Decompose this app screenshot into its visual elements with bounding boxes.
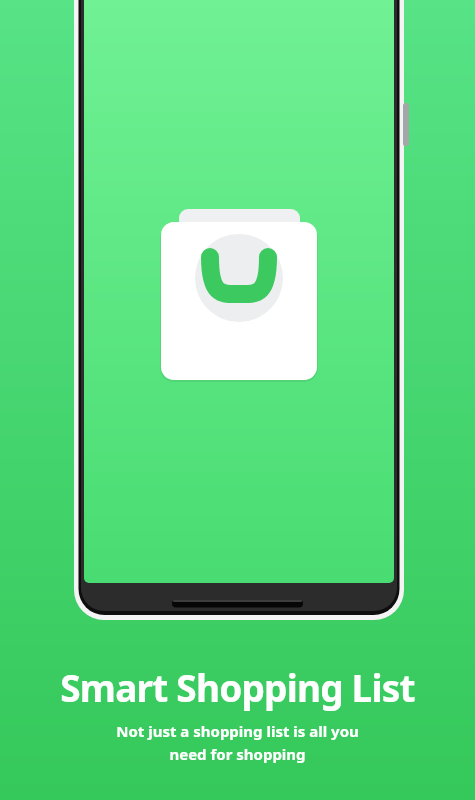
staticText: Smart Shopping List [60, 662, 415, 712]
staticText: Not just a shopping list is all you need… [116, 721, 359, 764]
